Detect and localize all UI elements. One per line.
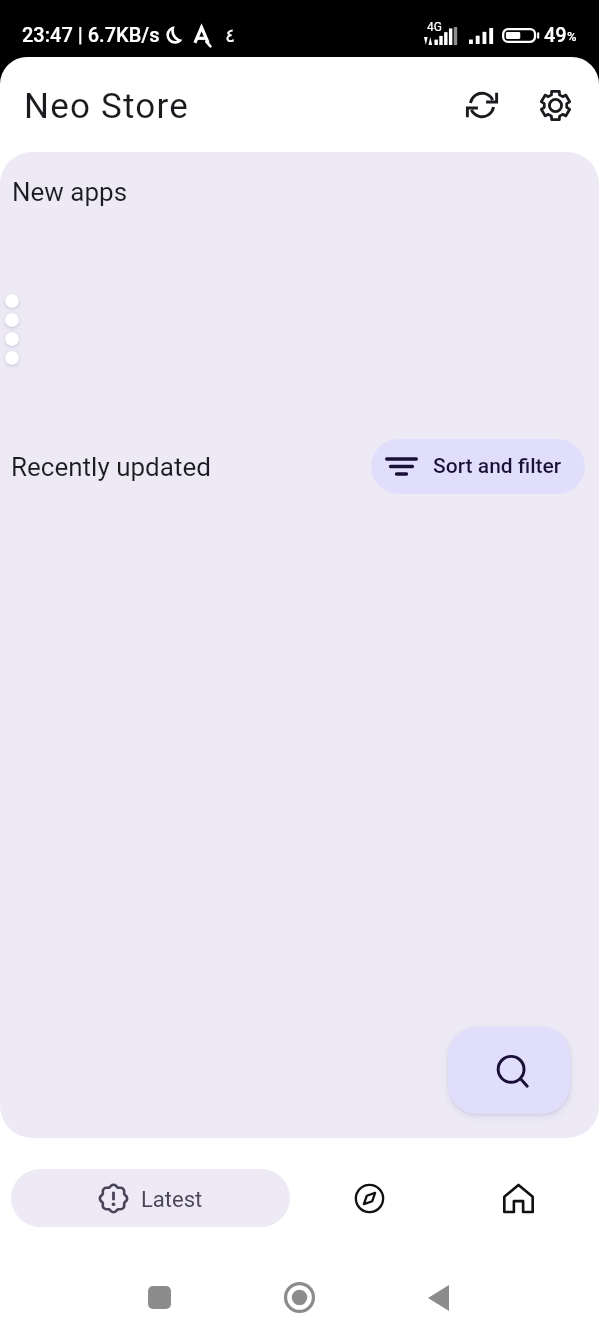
staticText: Neo Store (24, 86, 189, 127)
button[interactable] (5, 313, 19, 327)
button[interactable]: Refresh (456, 79, 508, 131)
staticText: ٤ (225, 24, 236, 46)
button[interactable]: Sort and filter (371, 439, 585, 494)
button[interactable]: Recent apps (131, 1269, 188, 1326)
staticText: Recently updated (11, 452, 211, 482)
staticText: Sort and filter (433, 454, 562, 479)
staticText: Latest (141, 1187, 203, 1213)
button[interactable] (5, 332, 19, 346)
button[interactable]: Home (489, 1169, 547, 1227)
button[interactable]: Search (448, 1027, 570, 1114)
button[interactable]: Latest (11, 1169, 290, 1227)
button[interactable]: Back (410, 1269, 467, 1326)
button[interactable]: Explore (340, 1169, 398, 1227)
button[interactable] (5, 351, 19, 365)
button[interactable] (5, 294, 19, 308)
button[interactable]: Settings (529, 79, 581, 131)
button[interactable]: Home (271, 1269, 328, 1326)
staticText: 23:47 | 6.7KB/s (22, 23, 160, 46)
staticText: 49 (544, 23, 567, 46)
staticText: New apps (12, 177, 128, 207)
staticText: % (567, 29, 577, 44)
staticText: 4G (427, 20, 442, 34)
